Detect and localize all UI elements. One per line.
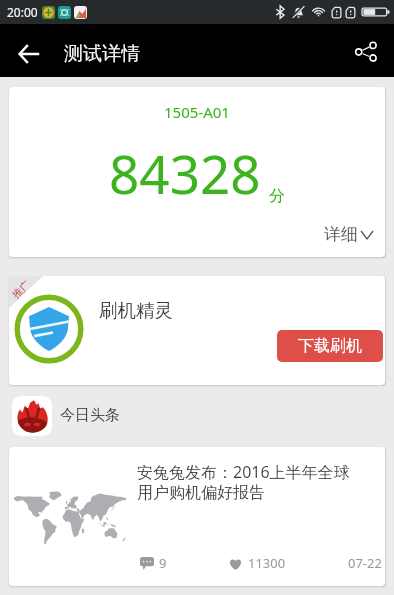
- button[interactable]: 安兔兔发布：2016上半年全球: [9, 447, 385, 586]
- staticText: 11300: [248, 554, 286, 572]
- button[interactable]: 1505-A01: [9, 87, 385, 257]
- staticText: 分: [269, 186, 285, 206]
- staticText: 下载刷机: [298, 336, 362, 356]
- staticText: 刷机精灵: [99, 299, 173, 322]
- staticText: 详细: [324, 224, 358, 245]
- staticText: 07-22: [348, 554, 382, 572]
- button[interactable]: Back: [0, 29, 56, 79]
- button[interactable]: 下载刷机: [277, 330, 383, 362]
- staticText: 推广: [9, 278, 33, 301]
- button[interactable]: 详细: [312, 218, 385, 257]
- staticText: 用户购机偏好报告: [137, 483, 265, 503]
- staticText: 测试详情: [64, 42, 140, 66]
- staticText: 今日头条: [60, 406, 120, 425]
- staticText: 20:00: [7, 4, 38, 20]
- staticText: 84328: [109, 137, 261, 209]
- button[interactable]: 今日头条: [12, 395, 382, 436]
- staticText: 9: [159, 554, 167, 572]
- staticText: 安兔兔发布：2016上半年全球: [137, 461, 350, 483]
- button[interactable]: Share: [337, 24, 394, 77]
- staticText: 1505-A01: [164, 102, 230, 122]
- button[interactable]: 刷机精灵: [9, 276, 385, 385]
